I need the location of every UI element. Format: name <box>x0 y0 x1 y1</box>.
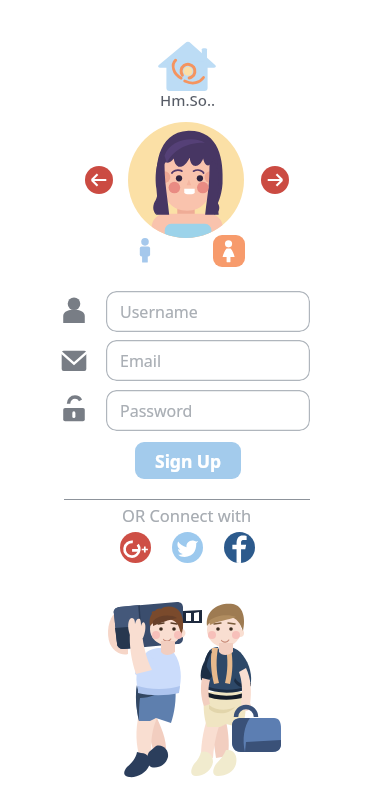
button[interactable]: Sign up with Twitter <box>172 532 203 563</box>
button[interactable]: Sign Up <box>135 442 241 479</box>
button[interactable]: Previous avatar <box>85 166 113 194</box>
staticText: Password <box>120 400 193 422</box>
staticText: Email <box>120 350 162 372</box>
staticText: Hm.So.. <box>160 90 216 108</box>
button[interactable]: Sign up with Facebook <box>224 532 255 563</box>
button[interactable]: Sign up with Google Plus <box>120 532 151 563</box>
button[interactable]: Male <box>136 236 155 266</box>
button[interactable]: Email <box>106 340 310 381</box>
staticText: Username <box>120 301 198 323</box>
staticText: Sign Up <box>155 449 222 473</box>
button[interactable]: Username <box>106 291 310 332</box>
staticText: OR Connect with <box>122 504 252 524</box>
button[interactable]: Next avatar <box>261 166 289 194</box>
button[interactable]: Password <box>106 390 310 431</box>
button[interactable]: Female <box>213 235 245 267</box>
